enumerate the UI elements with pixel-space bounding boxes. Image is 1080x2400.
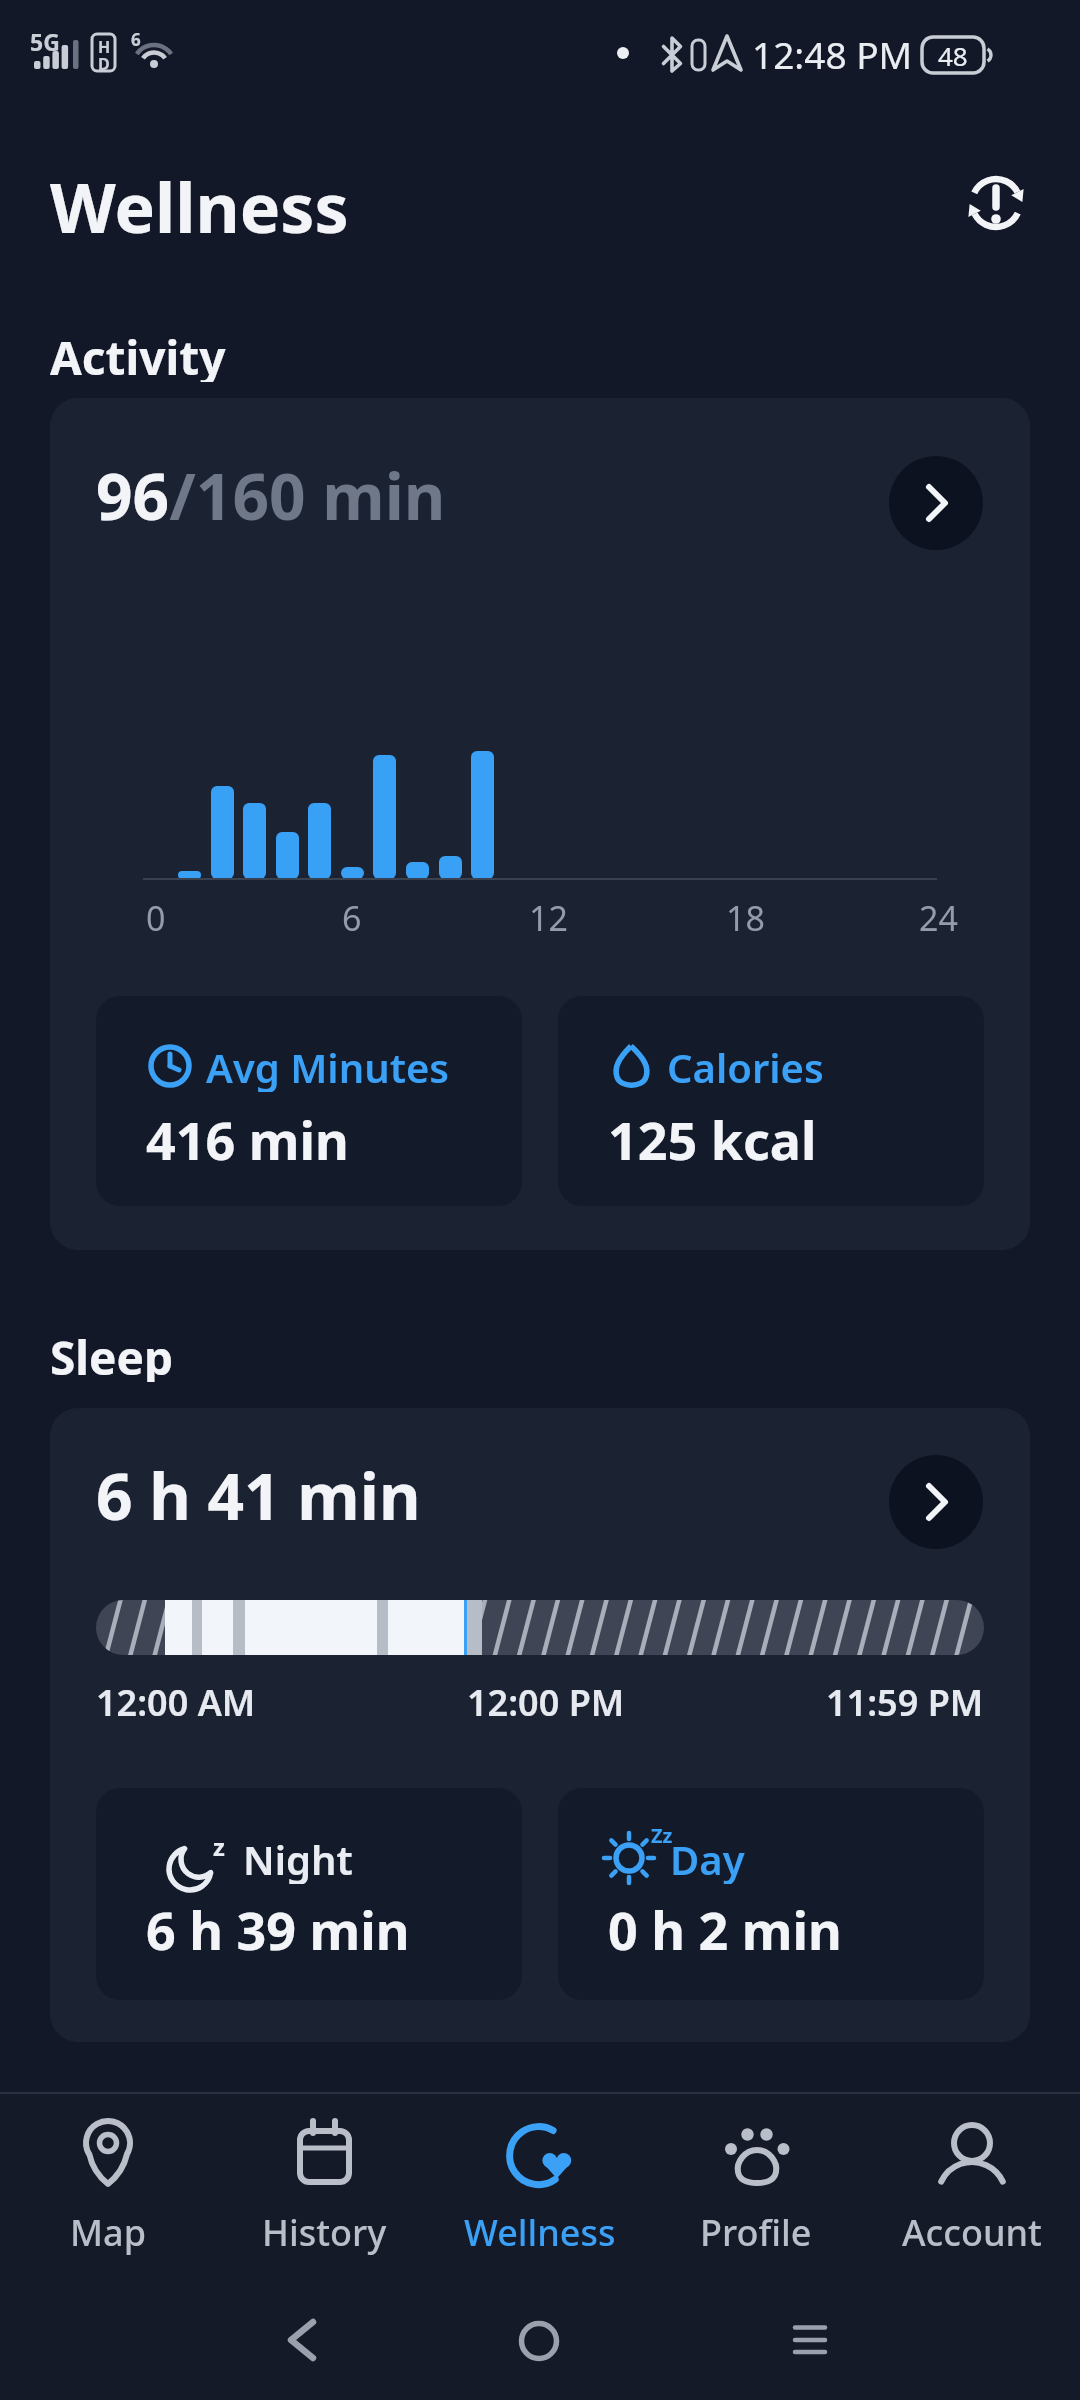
staticText: 12:00 AM bbox=[96, 1678, 256, 1720]
staticText: D bbox=[98, 53, 110, 71]
staticText: 0 h 2 min bbox=[608, 1894, 842, 1952]
button[interactable] bbox=[260, 2300, 340, 2380]
staticText: 18 bbox=[726, 895, 765, 935]
staticText: Calories bbox=[667, 1040, 824, 1092]
button[interactable] bbox=[500, 2300, 580, 2380]
staticText: 5G bbox=[30, 26, 60, 52]
staticText: 416 min bbox=[146, 1104, 349, 1162]
button[interactable] bbox=[955, 165, 1035, 245]
staticText: Account bbox=[902, 2208, 1042, 2256]
staticText: 12:00 PM bbox=[467, 1678, 625, 1720]
staticText: 24 bbox=[919, 895, 958, 935]
staticText: Activity bbox=[50, 326, 226, 382]
staticText: H bbox=[98, 36, 111, 54]
button[interactable] bbox=[889, 456, 983, 550]
staticText: History bbox=[262, 2208, 387, 2256]
staticText: Wellness bbox=[464, 2208, 616, 2256]
button[interactable] bbox=[0, 2100, 216, 2265]
staticText: 48 bbox=[938, 38, 968, 73]
button[interactable] bbox=[50, 1408, 1030, 2042]
staticText: Profile bbox=[700, 2208, 812, 2256]
staticText: Zz bbox=[651, 1822, 673, 1848]
staticText: 6 bbox=[342, 895, 362, 935]
button[interactable] bbox=[770, 2300, 850, 2380]
staticText: Wellness bbox=[50, 160, 349, 250]
button[interactable] bbox=[864, 2100, 1080, 2265]
staticText: Avg Minutes bbox=[206, 1040, 450, 1092]
staticText: Map bbox=[70, 2208, 146, 2256]
staticText: 12 bbox=[529, 895, 568, 935]
button[interactable] bbox=[50, 398, 1030, 1250]
staticText: 6 h 41 min bbox=[96, 1452, 421, 1532]
staticText: Day bbox=[670, 1832, 745, 1884]
staticText: 6 h 39 min bbox=[146, 1894, 410, 1952]
staticText: 0 bbox=[146, 895, 166, 935]
staticText: 96/160 min bbox=[96, 452, 446, 532]
staticText: 12:48 PM bbox=[752, 29, 913, 79]
button[interactable] bbox=[889, 1455, 983, 1549]
button[interactable] bbox=[648, 2100, 864, 2265]
button[interactable] bbox=[432, 2100, 648, 2265]
staticText: Sleep bbox=[50, 1326, 174, 1382]
staticText: Night bbox=[243, 1832, 353, 1884]
staticText: 6 bbox=[131, 28, 141, 48]
staticText: z bbox=[213, 1830, 225, 1856]
staticText: 11:59 PM bbox=[826, 1678, 984, 1720]
button[interactable] bbox=[216, 2100, 432, 2265]
staticText: 125 kcal bbox=[608, 1104, 817, 1162]
